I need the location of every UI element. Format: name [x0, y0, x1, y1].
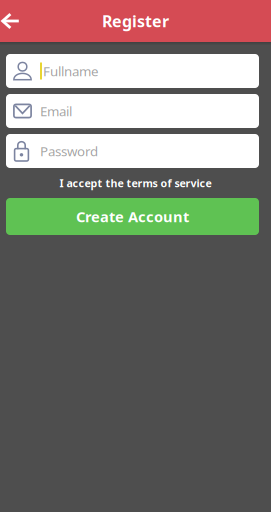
staticText: Password [40, 142, 98, 160]
staticText: I accept the terms of service [59, 176, 211, 190]
staticText: Fullname [43, 62, 99, 80]
button[interactable]: Back [0, 0, 21, 42]
staticText: Create Account [76, 207, 189, 226]
button[interactable]: I accept the terms of service [59, 176, 211, 190]
button[interactable]: Fullname [6, 54, 259, 88]
staticText: Email [40, 102, 72, 120]
button[interactable]: Create Account [6, 198, 259, 235]
button[interactable]: Email [6, 94, 259, 128]
staticText: Register [102, 10, 169, 32]
button[interactable]: Password [6, 134, 259, 168]
